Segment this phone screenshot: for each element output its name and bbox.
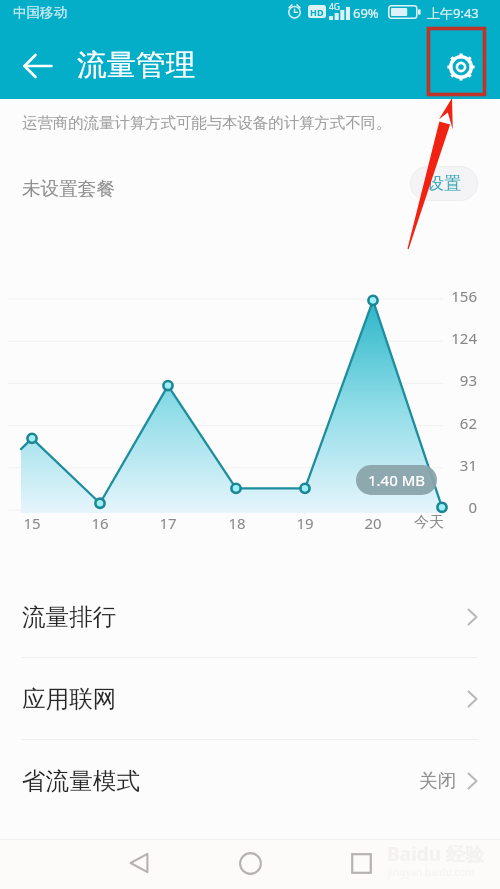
button[interactable]: 应用联网 bbox=[0, 658, 500, 739]
button[interactable]: Home bbox=[226, 839, 274, 887]
staticText: 31 bbox=[441, 455, 477, 475]
staticText: 18 bbox=[228, 513, 246, 533]
staticText: 中国移动 bbox=[13, 4, 67, 21]
staticText: 19 bbox=[296, 513, 314, 533]
staticText: 流量管理 bbox=[77, 47, 195, 84]
staticText: 1.40 MB bbox=[368, 470, 426, 490]
staticText: 应用联网 bbox=[22, 684, 117, 714]
staticText: 运营商的流量计算方式可能与本设备的计算方式不同。 bbox=[22, 113, 392, 132]
staticText: 未设置套餐 bbox=[22, 177, 115, 200]
button[interactable]: Back bbox=[115, 839, 163, 887]
staticText: 流量排行 bbox=[22, 602, 117, 632]
staticText: 93 bbox=[441, 370, 477, 390]
staticText: 关闭 bbox=[419, 769, 456, 792]
staticText: 0 bbox=[441, 497, 477, 517]
staticText: 62 bbox=[441, 413, 477, 433]
staticText: 124 bbox=[441, 328, 477, 348]
staticText: 15 bbox=[23, 513, 41, 533]
staticText: 20 bbox=[364, 513, 382, 533]
staticText: 17 bbox=[159, 513, 177, 533]
button[interactable]: Recents bbox=[337, 839, 385, 887]
staticText: 今天 bbox=[414, 513, 444, 532]
button[interactable]: Settings bbox=[439, 45, 483, 89]
button[interactable]: Back bbox=[16, 44, 60, 88]
staticText: Baidu 经验 bbox=[387, 841, 484, 867]
staticText: HD bbox=[310, 6, 324, 18]
button[interactable]: 流量排行 bbox=[0, 576, 500, 657]
staticText: 4G bbox=[329, 1, 341, 13]
staticText: 上午9:43 bbox=[427, 4, 479, 22]
staticText: 156 bbox=[441, 286, 477, 306]
staticText: 设置 bbox=[427, 173, 461, 194]
button[interactable]: 省流量模式 bbox=[0, 740, 500, 821]
button[interactable]: 设置 bbox=[410, 166, 478, 201]
staticText: 69% bbox=[353, 4, 379, 22]
staticText: 16 bbox=[91, 513, 109, 533]
staticText: 省流量模式 bbox=[22, 766, 140, 796]
